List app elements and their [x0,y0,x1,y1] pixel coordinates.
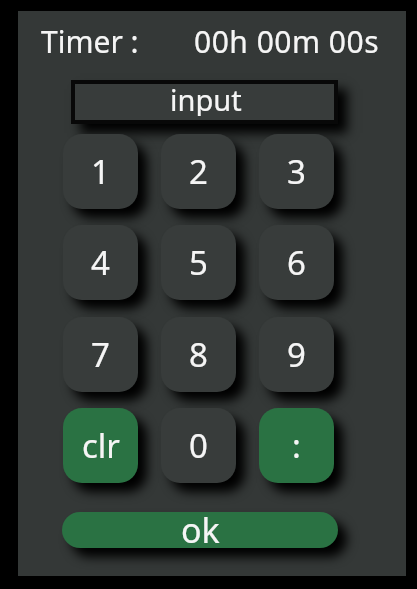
button[interactable]: input [75,84,334,120]
button[interactable]: 6 [259,225,334,300]
button[interactable]: 3 [259,134,334,209]
staticText: ok [181,512,220,543]
staticText: 2 [189,149,208,194]
staticText: Timer : [41,21,139,62]
staticText: 9 [287,332,306,377]
button[interactable]: 0 [161,408,236,483]
button[interactable]: 5 [161,225,236,300]
staticText: 0 [189,423,208,468]
staticText: 5 [189,240,208,285]
staticText: 7 [91,332,110,377]
staticText: 3 [287,149,306,194]
button[interactable]: 2 [161,134,236,209]
staticText: : [292,423,301,468]
button[interactable]: 1 [63,134,138,209]
button[interactable]: 7 [63,317,138,392]
button[interactable]: 9 [259,317,334,392]
staticText: 1 [91,149,110,194]
staticText: input [170,80,242,116]
button[interactable]: ok [62,512,338,548]
staticText: 6 [287,240,306,285]
button[interactable]: : [259,408,334,483]
button[interactable]: 8 [161,317,236,392]
button[interactable]: clr [63,408,138,483]
staticText: 4 [91,240,110,285]
staticText: 00h 00m 00s [194,21,380,62]
staticText: 8 [189,332,208,377]
staticText: clr [82,423,120,468]
button[interactable]: 4 [63,225,138,300]
